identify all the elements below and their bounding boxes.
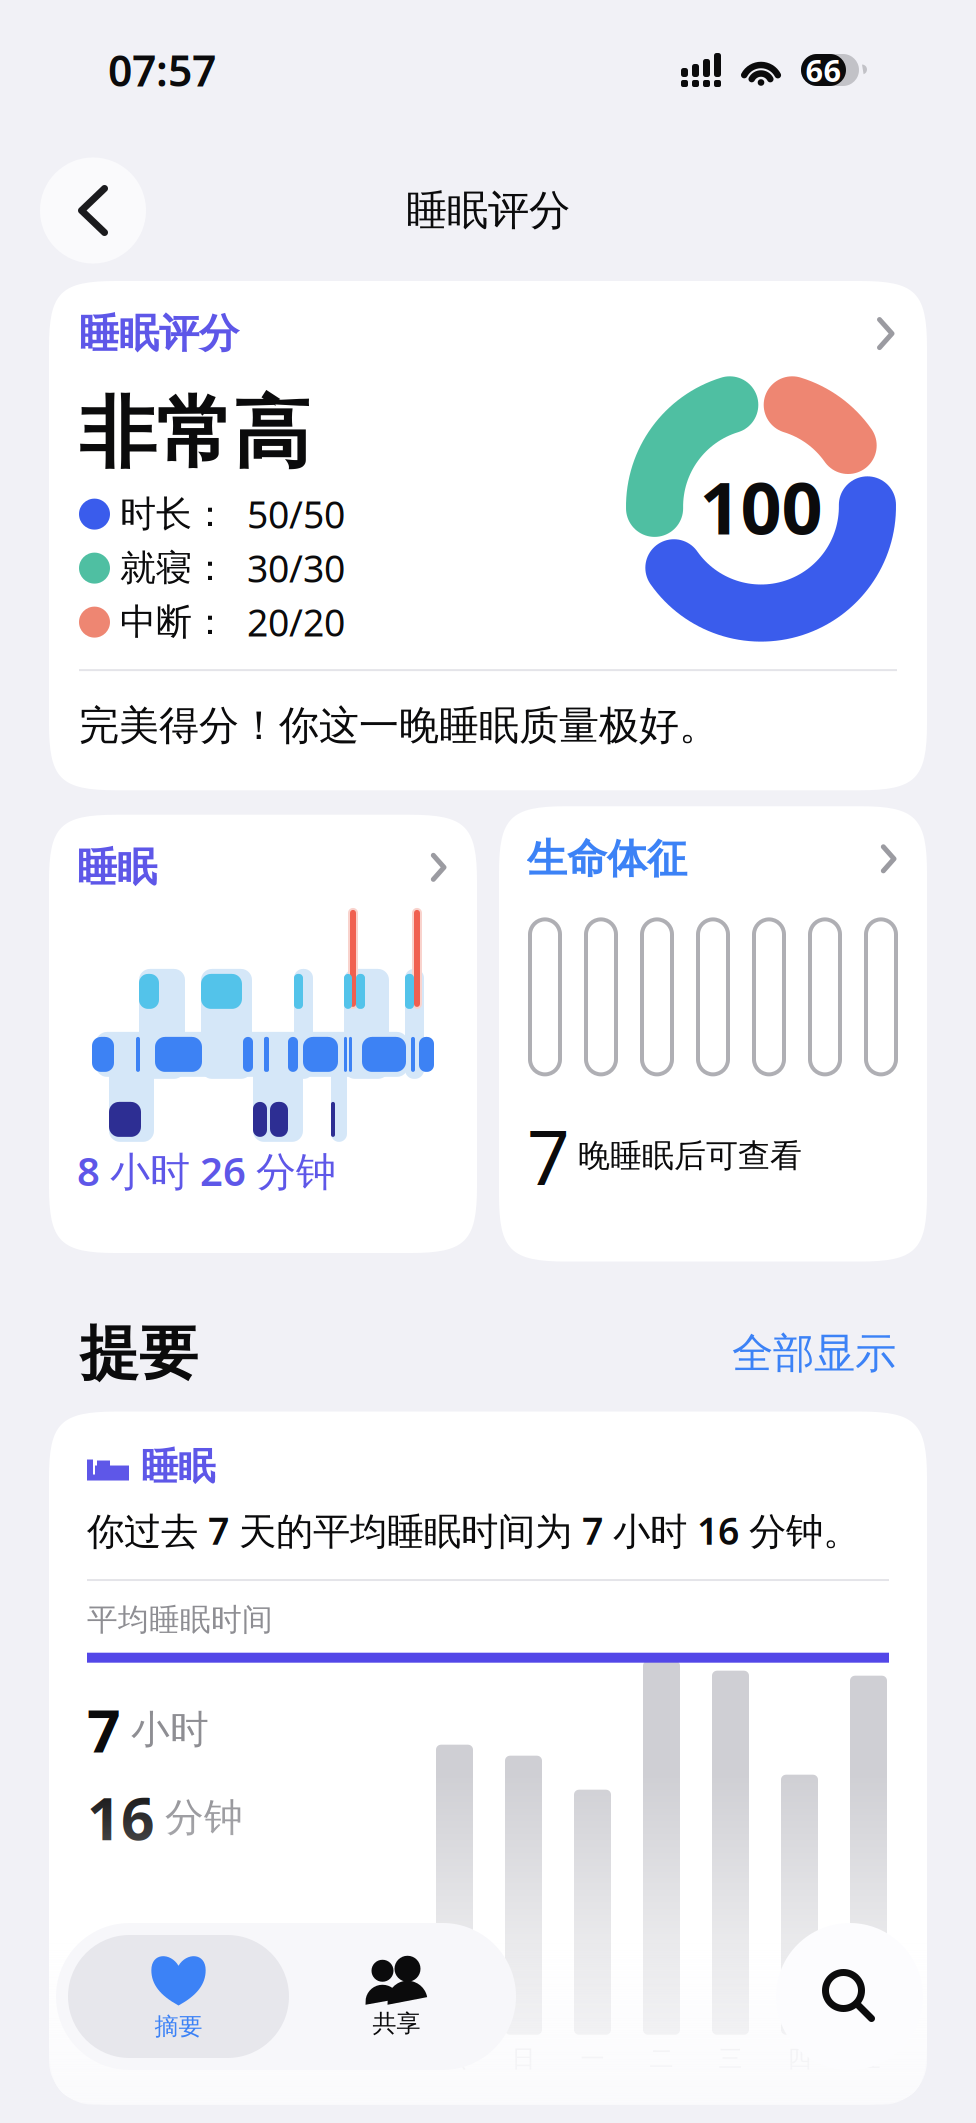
staticText: 16 bbox=[87, 1779, 155, 1856]
staticText: 睡眠 bbox=[77, 843, 157, 892]
staticText: 7 bbox=[87, 1691, 121, 1769]
staticText: 睡眠 bbox=[141, 1444, 215, 1489]
button[interactable]: 共享 bbox=[289, 1935, 504, 2058]
staticText: 50/50 bbox=[247, 489, 345, 539]
staticText: 07:57 bbox=[108, 42, 216, 98]
staticText: 小时 bbox=[131, 1706, 209, 1753]
staticText: 20/20 bbox=[247, 597, 345, 647]
staticText: 睡眠评分 bbox=[406, 185, 570, 236]
staticText: 8 小时 26 分钟 bbox=[77, 1144, 336, 1197]
staticText: 共享 bbox=[372, 2009, 420, 2038]
staticText: 中断： bbox=[120, 600, 228, 644]
staticText: 提要 bbox=[80, 1317, 198, 1390]
staticText: 平均睡眠时间 bbox=[87, 1601, 273, 1639]
staticText: 100 bbox=[699, 459, 822, 554]
button[interactable]: 睡眠评分 bbox=[49, 281, 927, 790]
button[interactable]: 全部显示 bbox=[732, 1328, 896, 1379]
button[interactable]: 睡眠 bbox=[49, 815, 477, 1253]
staticText: 时长： bbox=[120, 492, 228, 536]
staticText: 生命体征 bbox=[527, 834, 687, 883]
staticText: 7 bbox=[527, 1106, 570, 1206]
staticText: 摘要 bbox=[154, 2012, 202, 2041]
staticText: 完美得分！你这一晚睡眠质量极好。 bbox=[79, 701, 719, 750]
staticText: 分钟 bbox=[165, 1794, 243, 1841]
button[interactable]: 搜索 bbox=[776, 1923, 923, 2070]
staticText: 你过去 7 天的平均睡眠时间为 7 小时 16 分钟。 bbox=[87, 1505, 860, 1555]
staticText: 全部显示 bbox=[732, 1328, 896, 1379]
staticText: 非常高 bbox=[79, 386, 310, 481]
button[interactable]: 返回 bbox=[40, 157, 146, 263]
staticText: 就寝： bbox=[120, 546, 228, 590]
staticText: 晚睡眠后可查看 bbox=[578, 1136, 802, 1176]
button[interactable]: 摘要 bbox=[68, 1935, 289, 2058]
staticText: 66 bbox=[805, 50, 841, 90]
staticText: 30/30 bbox=[247, 543, 345, 593]
staticText: 睡眠评分 bbox=[79, 309, 239, 358]
button[interactable]: 生命体征 bbox=[499, 806, 927, 1261]
